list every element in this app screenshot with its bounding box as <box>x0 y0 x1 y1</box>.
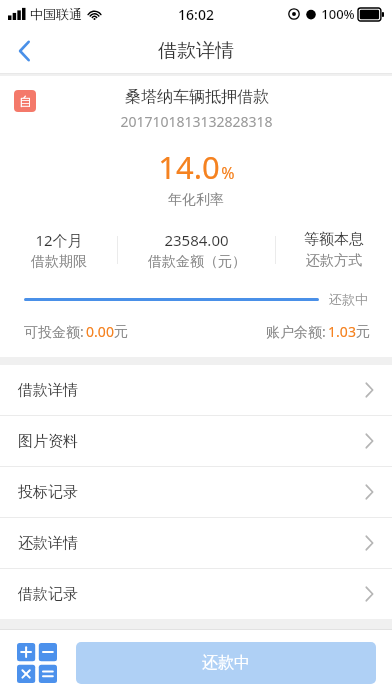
button[interactable]: 图片资料 <box>0 416 392 466</box>
button[interactable]: 还款中 <box>76 642 376 684</box>
button[interactable]: 借款详情 <box>0 365 392 415</box>
button[interactable]: 投标记录 <box>0 467 392 517</box>
staticText: 23584.00 <box>164 230 229 250</box>
staticText: 可投金额: <box>22 322 86 341</box>
staticText: 100% <box>321 5 355 23</box>
staticText: 图片资料 <box>18 432 78 451</box>
button[interactable]: 借款记录 <box>0 569 392 619</box>
staticText: 12个月 <box>35 230 83 250</box>
staticText: 还款中 <box>329 291 368 307</box>
staticText: 借款期限 <box>31 253 87 271</box>
button[interactable]: Calculator <box>16 642 58 684</box>
staticText: 还款中 <box>202 653 250 673</box>
staticText: 14.0 <box>158 146 220 188</box>
staticText: 0.00 <box>86 322 114 341</box>
staticText: 桑塔纳车辆抵押借款 <box>125 87 269 107</box>
staticText: 还款详情 <box>18 534 78 553</box>
staticText: 借款金额（元） <box>148 253 246 271</box>
staticText: 等额本息 <box>304 230 364 249</box>
staticText: 2017101813132828318 <box>120 112 273 131</box>
staticText: 元 <box>114 323 128 341</box>
staticText: 借款详情 <box>18 381 78 400</box>
staticText: 还款方式 <box>306 252 362 270</box>
staticText: % <box>221 162 235 184</box>
staticText: 账户余额: <box>264 322 328 341</box>
button[interactable]: Back <box>0 28 48 74</box>
staticText: 年化利率 <box>168 191 224 209</box>
staticText: 借款详情 <box>158 39 234 63</box>
staticText: 16:02 <box>178 5 214 24</box>
staticText: 1.03 <box>328 322 356 341</box>
staticText: 中国联通 <box>30 6 82 22</box>
staticText: 元 <box>356 323 370 341</box>
button[interactable]: 还款详情 <box>0 518 392 568</box>
staticText: 借款记录 <box>18 585 78 604</box>
staticText: 自 <box>19 93 32 109</box>
staticText: 投标记录 <box>18 483 78 502</box>
